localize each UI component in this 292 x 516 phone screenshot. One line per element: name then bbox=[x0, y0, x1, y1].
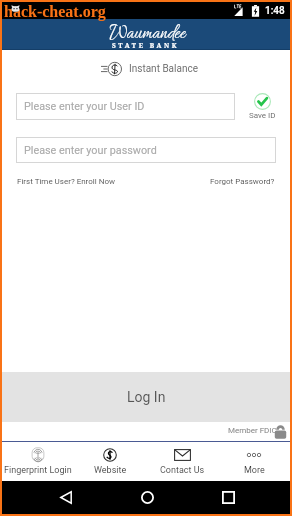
button[interactable]: Forgot Password? bbox=[209, 176, 276, 187]
staticText: Instant Balance bbox=[129, 63, 198, 75]
staticText: Contact Us bbox=[160, 465, 205, 476]
staticText: Website bbox=[94, 465, 127, 476]
button[interactable]: Please enter your password bbox=[16, 137, 276, 163]
button[interactable]: Back bbox=[52, 483, 80, 511]
staticText: Forgot Password? bbox=[210, 177, 275, 186]
staticText: More bbox=[244, 465, 265, 476]
button[interactable]: More bbox=[218, 441, 290, 481]
staticText: STATE BANK bbox=[112, 41, 180, 50]
staticText: 1:48 bbox=[265, 5, 285, 17]
staticText: Member FDIC bbox=[228, 426, 277, 435]
staticText: hack-cheat.org bbox=[4, 3, 106, 21]
staticText: Fingerprint Login bbox=[4, 465, 72, 476]
staticText: Waumandee bbox=[110, 20, 186, 48]
staticText: Log In bbox=[127, 389, 166, 405]
staticText: Please enter your User ID bbox=[24, 100, 145, 113]
button[interactable]: Home bbox=[133, 483, 161, 511]
button[interactable]: Website bbox=[74, 441, 146, 481]
button[interactable]: Contact Us bbox=[146, 441, 218, 481]
button[interactable]: Fingerprint Login bbox=[2, 441, 74, 481]
button[interactable]: Save ID bbox=[242, 93, 282, 120]
button[interactable]: Log In bbox=[2, 372, 290, 422]
button[interactable]: Instant Balance bbox=[95, 57, 204, 81]
button[interactable]: Recent apps bbox=[214, 483, 242, 511]
staticText: First Time User? Enroll Now bbox=[17, 177, 115, 186]
staticText: Save ID bbox=[249, 111, 276, 120]
staticText: Please enter your password bbox=[24, 144, 157, 157]
button[interactable]: First Time User? Enroll Now bbox=[16, 176, 116, 187]
button[interactable]: Please enter your User ID bbox=[16, 93, 235, 120]
